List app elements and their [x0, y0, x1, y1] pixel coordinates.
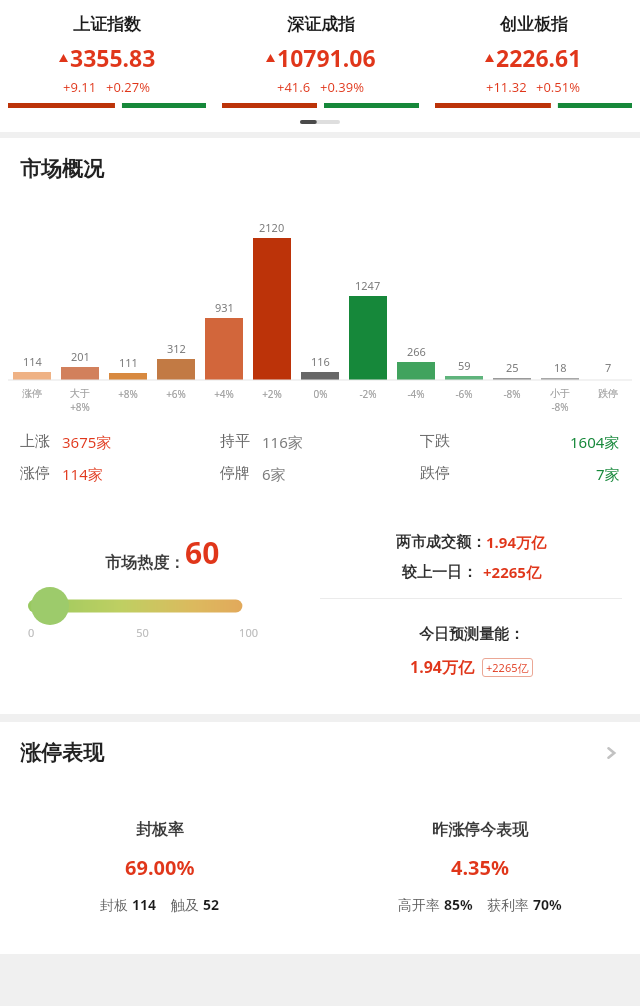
staticText: 创业板指	[500, 14, 568, 35]
staticText: +0.51%	[536, 78, 581, 96]
staticText: 201	[71, 349, 90, 364]
staticText: +9.11	[63, 78, 97, 96]
staticText: 116家	[262, 432, 303, 452]
staticText: -8%	[551, 400, 569, 414]
staticText: 266	[407, 344, 426, 359]
staticText: 60	[185, 532, 220, 573]
staticText: +11.32	[486, 78, 527, 96]
staticText: 小于	[550, 387, 570, 400]
staticText: +8%	[70, 400, 90, 414]
staticText: 1.94万亿	[410, 656, 474, 678]
staticText: 触及	[171, 895, 203, 914]
staticText: 0	[28, 625, 104, 640]
staticText: 3355.83	[70, 42, 156, 73]
staticText: 3675家	[62, 432, 112, 452]
staticText: 封板	[100, 895, 132, 914]
staticText: 111	[119, 355, 138, 370]
staticText: 持平	[220, 432, 250, 451]
staticText: 0%	[313, 387, 328, 401]
staticText: -8%	[503, 387, 521, 401]
staticText: 69.00%	[125, 854, 195, 881]
staticText: -4%	[407, 387, 425, 401]
staticText: 停牌	[220, 464, 250, 483]
button[interactable]: 涨停表现	[0, 722, 640, 780]
staticText: 获利率	[487, 895, 533, 914]
staticText: 2120	[259, 220, 285, 235]
staticText: -2%	[359, 387, 377, 401]
staticText: 6家	[262, 464, 286, 484]
staticText: +41.6	[277, 78, 311, 96]
staticText: 跌停	[420, 464, 450, 483]
staticText: +8%	[118, 387, 138, 401]
staticText: +2%	[262, 387, 282, 401]
staticText: 85%	[444, 895, 473, 914]
staticText: 931	[215, 300, 234, 315]
staticText: 10791.06	[277, 42, 376, 73]
staticText: 跌停	[598, 387, 618, 400]
staticText: 70%	[533, 895, 562, 914]
staticText: 今日预测量能：	[419, 625, 524, 644]
staticText: 高开率	[398, 895, 444, 914]
other: 涨停表现详情	[602, 744, 620, 762]
button[interactable]: 创业板指	[427, 14, 640, 108]
staticText: 1.94万亿	[486, 532, 546, 552]
button[interactable]: 深证成指	[214, 14, 427, 108]
staticText: 59	[458, 358, 471, 373]
button[interactable]: 上证指数	[0, 14, 214, 108]
staticText: 25	[506, 360, 519, 375]
staticText: 大于	[70, 387, 90, 400]
staticText: 1247	[355, 278, 381, 293]
staticText: 114家	[62, 464, 103, 484]
staticText: 较上一日：	[402, 563, 477, 582]
staticText: +6%	[166, 387, 186, 401]
staticText: 上证指数	[73, 14, 141, 35]
button[interactable]: 昨涨停今表现	[320, 820, 640, 914]
staticText: 涨停	[20, 464, 50, 483]
button[interactable]: 封板率	[0, 820, 320, 914]
staticText: 昨涨停今表现	[432, 820, 528, 840]
staticText: 7家	[596, 464, 620, 484]
staticText: +4%	[214, 387, 234, 401]
staticText: 100	[181, 625, 258, 640]
staticText: 上涨	[20, 432, 50, 451]
staticText: -6%	[455, 387, 473, 401]
staticText: 市场热度：	[105, 553, 185, 573]
staticText: 114	[23, 354, 42, 369]
staticText: +0.27%	[106, 78, 151, 96]
staticText: 封板率	[136, 820, 184, 840]
staticText: 2226.61	[496, 42, 582, 73]
staticText: 深证成指	[287, 14, 355, 35]
staticText: 116	[311, 354, 330, 369]
staticText: 市场概况	[20, 156, 104, 182]
staticText: 4.35%	[451, 854, 509, 881]
staticText: 下跌	[420, 432, 450, 451]
staticText: 1604家	[570, 432, 620, 452]
staticText: +2265亿	[483, 562, 541, 582]
staticText: 52	[203, 895, 220, 914]
staticText: 312	[167, 341, 186, 356]
staticText: 两市成交额：	[396, 533, 486, 552]
staticText: 18	[554, 360, 567, 375]
staticText: +0.39%	[320, 78, 365, 96]
staticText: 114	[132, 895, 157, 914]
staticText: 7	[605, 360, 612, 375]
staticText: 涨停	[22, 387, 42, 400]
staticText: 50	[104, 625, 181, 640]
staticText: 涨停表现	[20, 740, 602, 766]
staticText: +2265亿	[486, 660, 529, 675]
